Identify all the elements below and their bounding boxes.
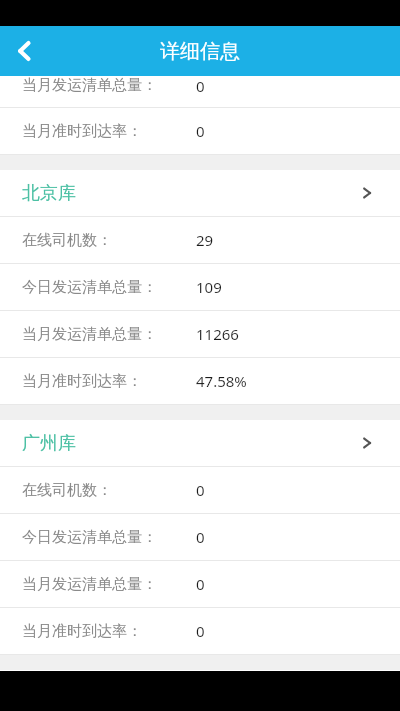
- staticText: 在线司机数：: [22, 231, 112, 250]
- staticText: 在线司机数：: [22, 481, 112, 500]
- staticText: 47.58%: [196, 371, 247, 391]
- staticText: 0: [196, 574, 205, 594]
- staticText: 0: [196, 480, 205, 500]
- staticText: 0: [196, 76, 205, 96]
- button[interactable]: 在线司机数：: [0, 217, 400, 263]
- staticText: 0: [196, 121, 205, 141]
- button[interactable]: 当月发运清单总量：: [0, 311, 400, 357]
- staticText: 当月发运清单总量：: [22, 76, 157, 95]
- staticText: 详细信息: [160, 39, 240, 64]
- button[interactable]: 今日发运清单总量：: [0, 514, 400, 560]
- staticText: 29: [196, 230, 214, 250]
- button[interactable]: 当月准时到达率：: [0, 108, 400, 154]
- staticText: 广州库: [22, 432, 76, 455]
- button[interactable]: 北京库: [0, 170, 400, 216]
- staticText: 当月发运清单总量：: [22, 575, 157, 594]
- staticText: 当月准时到达率：: [22, 622, 142, 641]
- button[interactable]: 广州库: [0, 420, 400, 466]
- staticText: 北京库: [22, 182, 76, 205]
- button[interactable]: 当月准时到达率：: [0, 358, 400, 404]
- button[interactable]: 当月发运清单总量：: [0, 76, 400, 107]
- staticText: 11266: [196, 324, 239, 344]
- staticText: 当月准时到达率：: [22, 372, 142, 391]
- staticText: 今日发运清单总量：: [22, 278, 157, 297]
- staticText: 当月准时到达率：: [22, 122, 142, 141]
- staticText: 0: [196, 621, 205, 641]
- button[interactable]: 当月准时到达率：: [0, 608, 400, 654]
- staticText: 今日发运清单总量：: [22, 528, 157, 547]
- staticText: 0: [196, 527, 205, 547]
- staticText: 当月发运清单总量：: [22, 325, 157, 344]
- button[interactable]: 当月发运清单总量：: [0, 561, 400, 607]
- staticText: 109: [196, 277, 222, 297]
- button[interactable]: 今日发运清单总量：: [0, 264, 400, 310]
- button[interactable]: Back: [0, 26, 50, 76]
- button[interactable]: 在线司机数：: [0, 467, 400, 513]
